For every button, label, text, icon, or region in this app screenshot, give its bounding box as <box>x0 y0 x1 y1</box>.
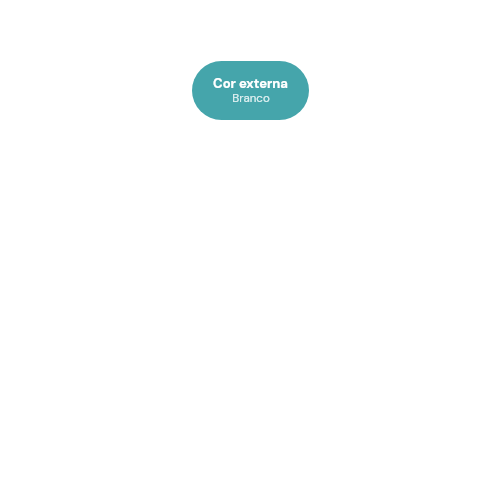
staticText: Branco <box>232 91 270 106</box>
staticText: Cor externa <box>213 75 288 92</box>
button[interactable]: Cor externa <box>192 61 309 120</box>
